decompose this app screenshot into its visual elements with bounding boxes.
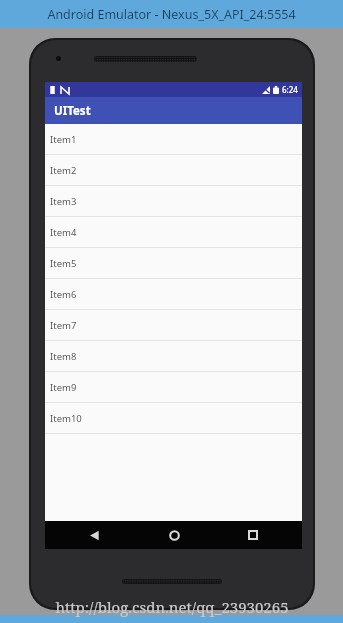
button[interactable]: Item5	[45, 248, 302, 279]
button[interactable]: Home	[144, 521, 204, 549]
staticText: Item1	[50, 133, 77, 146]
staticText: Item4	[50, 226, 77, 239]
button[interactable]: Item9	[45, 372, 302, 403]
staticText: Item6	[50, 288, 77, 301]
button[interactable]: Item6	[45, 279, 302, 310]
staticText: Item10	[50, 412, 82, 425]
staticText: 6:24	[282, 84, 298, 95]
staticText: Item3	[50, 195, 77, 208]
button[interactable]: Recent apps	[223, 521, 283, 549]
staticText: Item8	[50, 350, 77, 363]
button[interactable]: Item7	[45, 310, 302, 341]
button[interactable]: Item8	[45, 341, 302, 372]
button[interactable]: Item2	[45, 155, 302, 186]
staticText: Item5	[50, 257, 77, 270]
button[interactable]: Item3	[45, 186, 302, 217]
button[interactable]: Back	[64, 521, 124, 549]
button[interactable]: Item10	[45, 403, 302, 434]
staticText: Item2	[50, 164, 77, 177]
staticText: Android Emulator - Nexus_5X_API_24:5554	[47, 6, 296, 23]
staticText: http://blog.csdn.net/qq_23930265	[55, 597, 289, 617]
button[interactable]: Item1	[45, 124, 302, 155]
staticText: Item9	[50, 381, 77, 394]
staticText: Item7	[50, 319, 77, 332]
button[interactable]: Item4	[45, 217, 302, 248]
staticText: UITest	[54, 103, 91, 119]
